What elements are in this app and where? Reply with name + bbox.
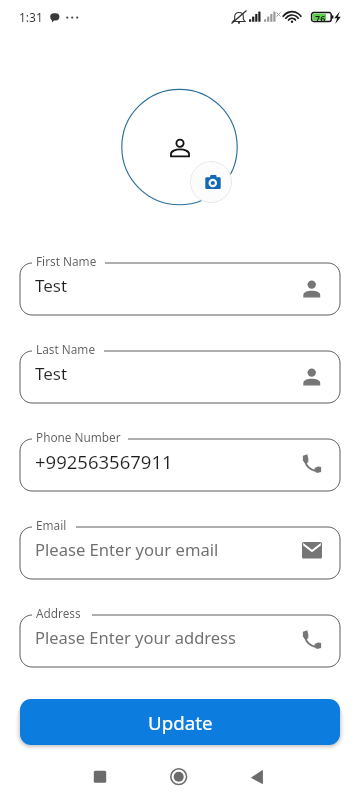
staticText: 1:31 [19,9,43,25]
button[interactable]: Address [20,615,340,667]
staticText: Test [35,362,68,385]
button[interactable]: First Name [20,263,340,315]
staticText: 76 [315,12,326,24]
staticText: Address [36,605,81,621]
staticText: Please Enter your address [35,626,236,648]
staticText: Email [36,517,67,533]
staticText: +992563567911 [35,449,173,474]
button[interactable]: Change profile photo [190,161,232,203]
staticText: Update [148,710,213,735]
button[interactable]: Phone Number [20,439,340,491]
button[interactable]: Email [20,527,340,579]
button[interactable]: Update [20,699,340,745]
staticText: First Name [36,253,97,269]
staticText: Phone Number [36,429,121,445]
button[interactable]: Back [247,765,271,789]
staticText: Please Enter your email [35,538,219,561]
staticText: Test [35,274,68,297]
button[interactable]: Recent apps [88,765,112,789]
staticText: Last Name [36,341,96,357]
button[interactable]: Last Name [20,351,340,403]
button[interactable]: Home [167,765,191,789]
